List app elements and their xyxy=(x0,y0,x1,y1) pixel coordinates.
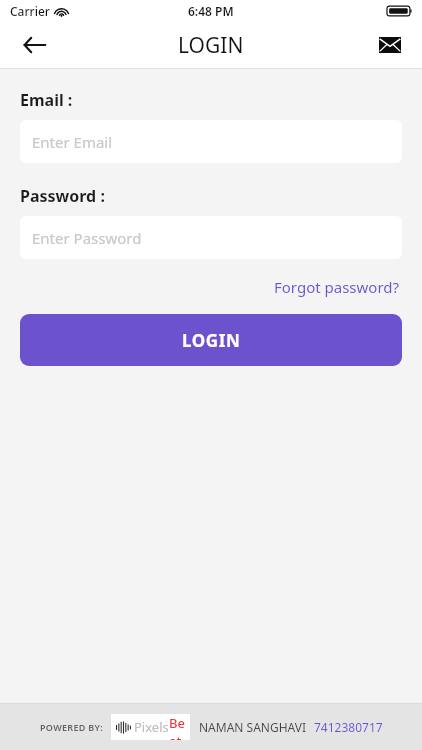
button[interactable]: 7412380717 xyxy=(314,719,383,735)
button[interactable]: Enter Password xyxy=(20,216,402,259)
staticText: Carrier xyxy=(10,3,50,19)
staticText: Beat xyxy=(169,714,185,740)
staticText: Pixels xyxy=(134,718,169,736)
staticText: Password : xyxy=(20,185,105,207)
staticText: 7412380717 xyxy=(314,719,383,735)
staticText: Enter Email xyxy=(32,132,113,152)
button[interactable]: Back xyxy=(14,25,54,65)
staticText: NAMAN SANGHAVI xyxy=(199,719,307,735)
staticText: Forgot password? xyxy=(274,277,400,297)
staticText: 6:48 PM xyxy=(188,3,234,19)
button[interactable]: Forgot password? xyxy=(272,273,402,301)
button[interactable]: LOGIN xyxy=(20,314,402,366)
staticText: LOGIN xyxy=(182,329,241,352)
staticText: Enter Password xyxy=(32,228,142,248)
staticText: Email : xyxy=(20,89,73,111)
button[interactable]: Enter Email xyxy=(20,120,402,163)
staticText: LOGIN xyxy=(178,31,244,60)
staticText: POWERED BY: xyxy=(40,721,104,733)
button[interactable]: Mail xyxy=(370,25,410,65)
